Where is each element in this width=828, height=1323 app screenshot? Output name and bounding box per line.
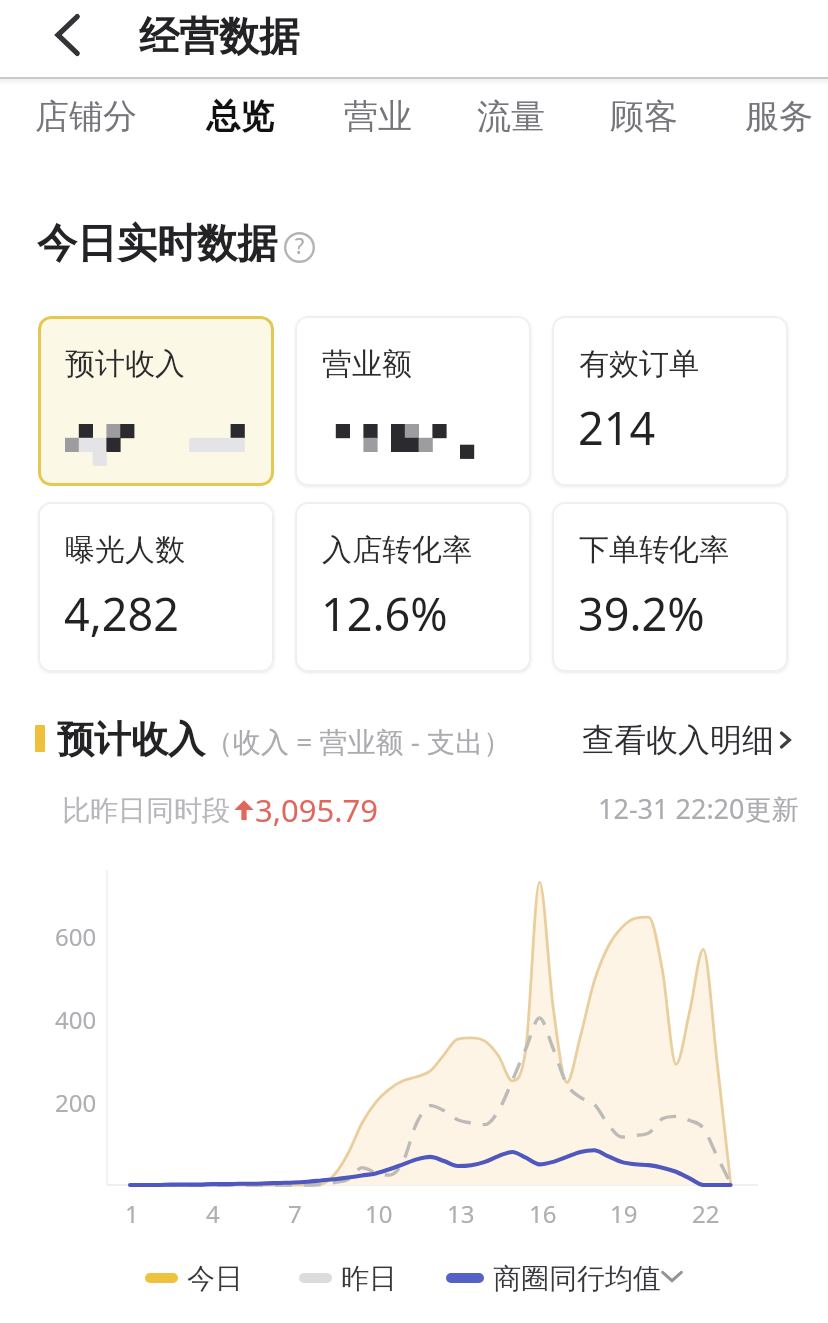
button[interactable]: 店铺分 (22, 86, 150, 146)
staticText: 19 (610, 1197, 638, 1230)
staticText: 营业额 (322, 345, 412, 383)
button[interactable]: 流量 (464, 86, 558, 146)
staticText: 39.2% (578, 583, 705, 644)
staticText: 今日 (187, 1261, 243, 1296)
staticText: （收入 = 营业额 - 支出） (205, 722, 512, 760)
staticText: 600 (55, 920, 97, 953)
button[interactable]: 商圈同行均值 (446, 1258, 661, 1298)
staticText: 昨日 (341, 1261, 397, 1296)
staticText: 4,282 (64, 583, 180, 644)
staticText: 下单转化率 (579, 531, 729, 569)
staticText: 400 (55, 1003, 97, 1036)
button[interactable]: 昨日 (299, 1258, 397, 1298)
staticText: 16 (529, 1197, 557, 1230)
button[interactable]: 预计收入 (38, 316, 274, 486)
staticText: 比昨日同时段 (62, 793, 230, 828)
staticText: 13 (447, 1197, 475, 1230)
staticText: 商圈同行均值 (493, 1261, 661, 1296)
button[interactable]: 查看收入明细 (582, 720, 796, 760)
staticText: 预计收入 (57, 716, 205, 763)
button[interactable]: 入店转化率 (295, 502, 531, 672)
staticText: 22 (692, 1197, 720, 1230)
staticText: 总览 (206, 95, 274, 138)
button[interactable]: 今日 (145, 1258, 243, 1298)
staticText: 流量 (477, 95, 545, 138)
staticText: 1 (125, 1197, 139, 1230)
staticText: 店铺分 (35, 95, 137, 138)
staticText: 214 (578, 397, 656, 458)
staticText: 12.6% (321, 583, 448, 644)
staticText: 经营数据 (139, 11, 299, 61)
button[interactable]: Back (34, 1, 102, 69)
staticText: 营业 (344, 95, 412, 138)
staticText: 今日实时数据 (37, 218, 277, 268)
button[interactable]: Help (284, 232, 315, 263)
button[interactable]: Expand legend (656, 1260, 688, 1292)
button[interactable]: 有效订单 (552, 316, 788, 486)
button[interactable]: 总览 (193, 86, 287, 146)
staticText: 200 (55, 1086, 97, 1119)
staticText: 4 (206, 1197, 220, 1230)
button[interactable]: 营业额 (295, 316, 531, 486)
staticText: 曝光人数 (65, 531, 185, 569)
staticText: 3,095.79 (255, 789, 379, 831)
staticText: ? (295, 232, 305, 261)
staticText: 10 (365, 1197, 393, 1230)
button[interactable]: 营业 (331, 86, 425, 146)
button[interactable]: 下单转化率 (552, 502, 788, 672)
button[interactable]: 服务 (732, 86, 826, 146)
staticText: 入店转化率 (322, 531, 472, 569)
button[interactable]: 曝光人数 (38, 502, 274, 672)
staticText: 预计收入 (65, 345, 185, 383)
staticText: 查看收入明细 (582, 720, 774, 760)
staticText: 顾客 (610, 95, 678, 138)
staticText: 7 (288, 1197, 302, 1230)
staticText: 有效订单 (579, 345, 699, 383)
button[interactable]: 顾客 (597, 86, 691, 146)
staticText: 服务 (745, 95, 813, 138)
staticText: 12-31 22:20更新 (598, 790, 799, 827)
